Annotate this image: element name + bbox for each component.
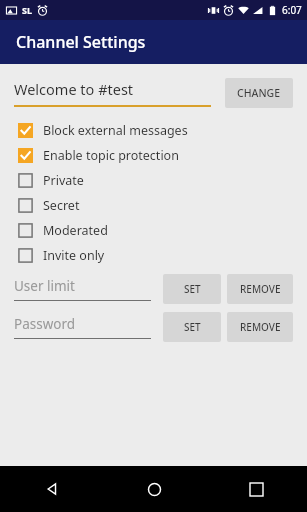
staticText: Welcome to #test (14, 79, 134, 99)
button[interactable]: Private (0, 168, 307, 193)
staticText: Moderated (43, 222, 108, 239)
button[interactable]: Invite only (0, 243, 307, 268)
staticText: Password (14, 315, 76, 333)
button[interactable]: Secret (0, 193, 307, 218)
button[interactable]: User limit (14, 277, 151, 301)
button[interactable]: REMOVE (227, 312, 293, 342)
staticText: SET (184, 320, 201, 334)
staticText: Private (43, 172, 84, 189)
button[interactable]: Moderated (0, 218, 307, 243)
staticText: Invite only (43, 247, 105, 264)
button[interactable]: Password (14, 315, 151, 339)
staticText: REMOVE (240, 282, 281, 296)
button[interactable]: Home (103, 466, 205, 512)
button[interactable]: CHANGE (225, 78, 293, 108)
staticText: User limit (14, 277, 75, 295)
staticText: CHANGE (237, 86, 281, 100)
staticText: Channel Settings (16, 31, 146, 53)
button[interactable]: SET (163, 312, 221, 342)
staticText: Enable topic protection (43, 147, 179, 164)
staticText: SL (22, 4, 32, 16)
staticText: 6:07 (282, 3, 302, 17)
staticText: REMOVE (240, 320, 281, 334)
button[interactable]: Recent apps (205, 466, 307, 512)
button[interactable]: SET (163, 274, 221, 304)
staticText: SET (184, 282, 201, 296)
button[interactable]: REMOVE (227, 274, 293, 304)
button[interactable]: Back (0, 466, 103, 512)
button[interactable]: Enable topic protection (0, 143, 307, 168)
staticText: Block external messages (43, 122, 188, 139)
staticText: Secret (43, 197, 80, 214)
button[interactable]: Block external messages (0, 118, 307, 143)
